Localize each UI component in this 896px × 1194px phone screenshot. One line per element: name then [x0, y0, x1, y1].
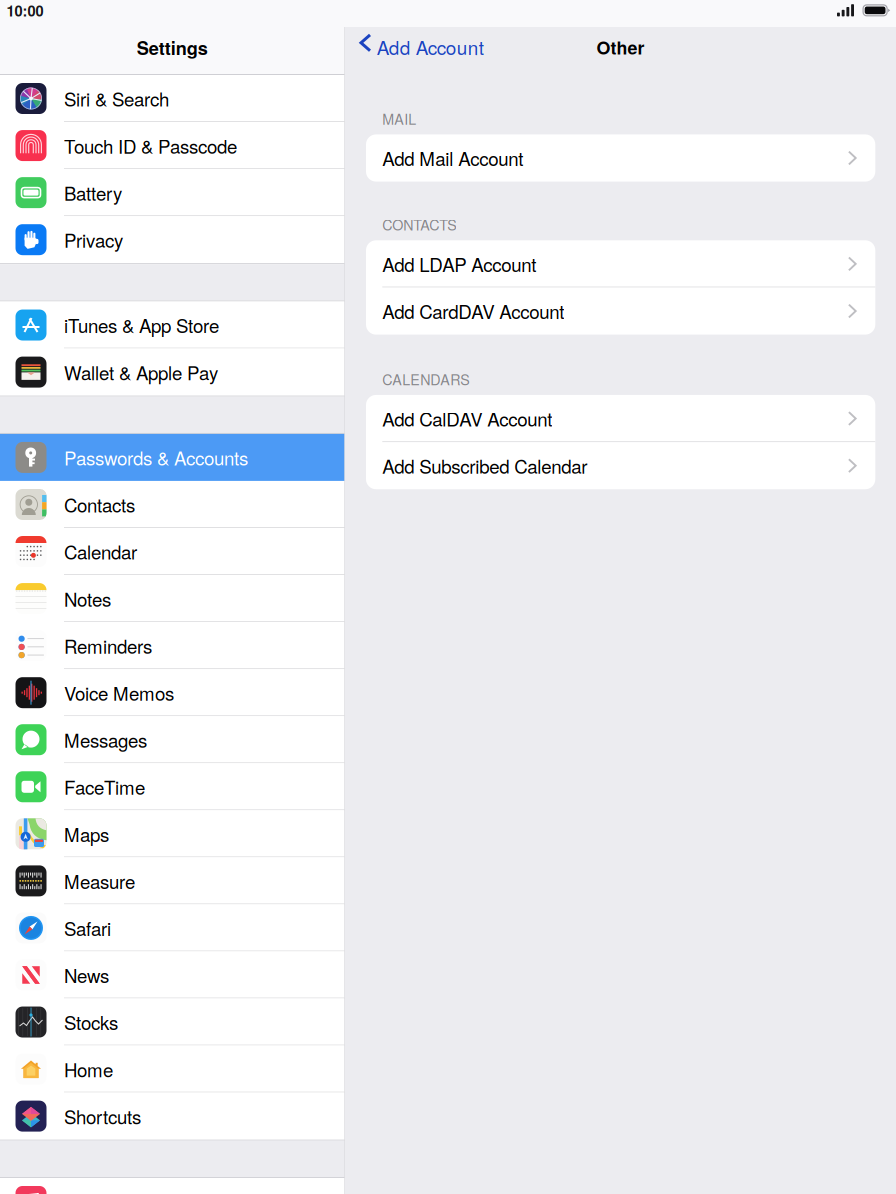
button[interactable]: Add Account: [345, 33, 545, 53]
staticText: Safari: [64, 915, 111, 941]
staticText: Settings: [137, 34, 208, 60]
staticText: Add CardDAV Account: [382, 298, 564, 324]
staticText: Calendar: [64, 538, 137, 565]
staticText: Home: [64, 1056, 113, 1082]
staticText: MAIL: [382, 108, 416, 129]
staticText: Add LDAP Account: [382, 250, 536, 277]
staticText: Stocks: [64, 1009, 118, 1035]
staticText: Add Subscribed Calendar: [382, 452, 587, 479]
button[interactable]: Wallet & Apple Pay: [0, 349, 344, 396]
button[interactable]: Touch ID & Passcode: [0, 122, 344, 169]
staticText: Notes: [64, 585, 111, 612]
button[interactable]: Music: [0, 1178, 344, 1194]
staticText: Add Mail Account: [382, 145, 523, 171]
staticText: Messages: [64, 726, 147, 753]
button[interactable]: Add Mail Account: [366, 134, 875, 181]
button[interactable]: Calendar: [0, 528, 344, 575]
button[interactable]: Maps: [0, 810, 344, 857]
button[interactable]: Passwords & Accounts: [0, 434, 344, 481]
staticText: Reminders: [64, 632, 152, 659]
button[interactable]: Add Subscribed Calendar: [366, 442, 875, 489]
staticText: Passwords & Accounts: [64, 444, 248, 471]
staticText: Measure: [64, 867, 135, 894]
staticText: Maps: [64, 820, 109, 847]
staticText: Add Account: [377, 33, 484, 60]
staticText: FaceTime: [64, 773, 145, 800]
button[interactable]: Siri & Search: [0, 75, 344, 122]
staticText: Wallet & Apple Pay: [64, 359, 218, 385]
button[interactable]: Shortcuts: [0, 1093, 344, 1140]
button[interactable]: Privacy: [0, 216, 344, 263]
staticText: Add CalDAV Account: [382, 405, 552, 432]
staticText: Voice Memos: [64, 679, 174, 706]
staticText: News: [64, 962, 109, 988]
staticText: Shortcuts: [64, 1103, 141, 1129]
staticText: Battery: [64, 179, 122, 206]
staticText: Touch ID & Passcode: [64, 132, 237, 159]
button[interactable]: Contacts: [0, 481, 344, 528]
button[interactable]: Measure: [0, 857, 344, 904]
button[interactable]: Reminders: [0, 622, 344, 669]
staticText: Siri & Search: [64, 85, 169, 112]
button[interactable]: iTunes & App Store: [0, 301, 344, 348]
staticText: CONTACTS: [382, 214, 457, 235]
button[interactable]: Stocks: [0, 998, 344, 1045]
button[interactable]: FaceTime: [0, 763, 344, 810]
button[interactable]: Add CardDAV Account: [366, 287, 875, 335]
button[interactable]: Add CalDAV Account: [366, 395, 875, 442]
staticText: Contacts: [64, 491, 135, 518]
button[interactable]: Notes: [0, 575, 344, 622]
button[interactable]: Home: [0, 1045, 344, 1092]
staticText: Other: [596, 34, 644, 60]
button[interactable]: Safari: [0, 904, 344, 951]
button[interactable]: News: [0, 951, 344, 998]
button[interactable]: Messages: [0, 716, 344, 763]
staticText: 10:00: [6, 0, 43, 21]
staticText: iTunes & App Store: [64, 312, 219, 338]
button[interactable]: Battery: [0, 169, 344, 216]
staticText: Privacy: [64, 226, 123, 253]
button[interactable]: Add LDAP Account: [366, 240, 875, 287]
button[interactable]: Voice Memos: [0, 669, 344, 716]
staticText: CALENDARS: [382, 369, 470, 389]
